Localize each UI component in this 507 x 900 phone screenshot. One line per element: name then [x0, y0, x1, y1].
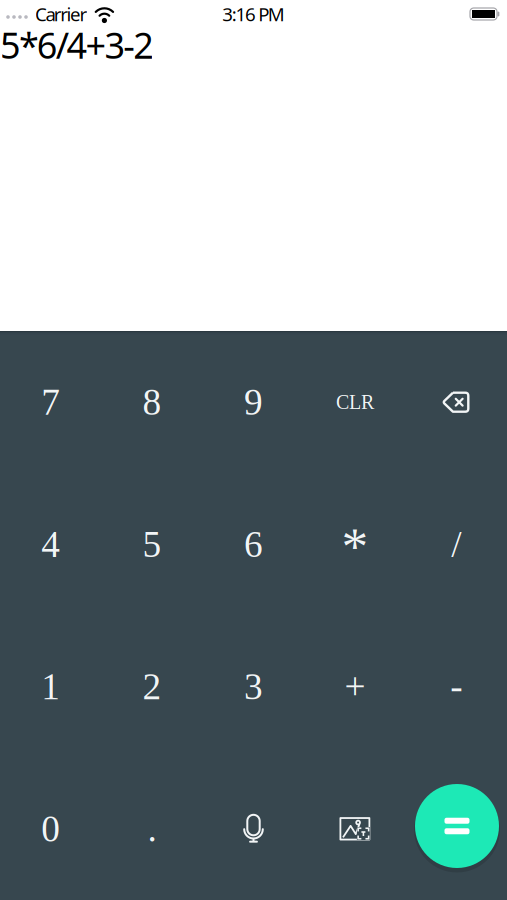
staticText: 5 [143, 524, 162, 565]
button[interactable]: Photo input [304, 758, 406, 900]
staticText: 7 [41, 381, 60, 423]
button[interactable]: - [406, 615, 507, 758]
staticText: 3:16 PM [222, 2, 285, 26]
staticText: 9 [244, 381, 263, 423]
button[interactable]: 5 [101, 473, 203, 615]
staticText: 0 [41, 808, 60, 849]
button[interactable]: 3 [203, 615, 304, 758]
button[interactable]: 0 [0, 758, 101, 900]
button[interactable]: 9 [203, 331, 304, 473]
button[interactable]: * [304, 473, 406, 615]
staticText: / [451, 524, 461, 565]
staticText: 6 [244, 524, 263, 565]
button[interactable]: Delete [406, 331, 507, 473]
button[interactable]: 7 [0, 331, 101, 473]
button[interactable]: 8 [101, 331, 203, 473]
staticText: * [341, 517, 368, 576]
staticText: 5*6/4+3-2 [0, 21, 154, 69]
staticText: 8 [143, 381, 162, 423]
button[interactable]: Equals [414, 783, 500, 869]
button[interactable]: CLR [304, 331, 406, 473]
staticText: + [344, 666, 365, 707]
staticText: 1 [41, 666, 60, 707]
staticText: 3 [244, 666, 263, 707]
button[interactable]: Voice input [203, 758, 304, 900]
button[interactable]: 2 [101, 615, 203, 758]
staticText: - [450, 666, 462, 707]
staticText: 4 [41, 524, 60, 565]
button[interactable]: / [406, 473, 507, 615]
staticText: CLR [336, 391, 374, 413]
staticText: . [148, 808, 157, 849]
button[interactable]: 4 [0, 473, 101, 615]
staticText: Carrier [35, 2, 87, 26]
button[interactable]: 1 [0, 615, 101, 758]
button[interactable]: + [304, 615, 406, 758]
staticText: 2 [143, 666, 162, 707]
button[interactable]: . [101, 758, 203, 900]
button[interactable]: 6 [203, 473, 304, 615]
